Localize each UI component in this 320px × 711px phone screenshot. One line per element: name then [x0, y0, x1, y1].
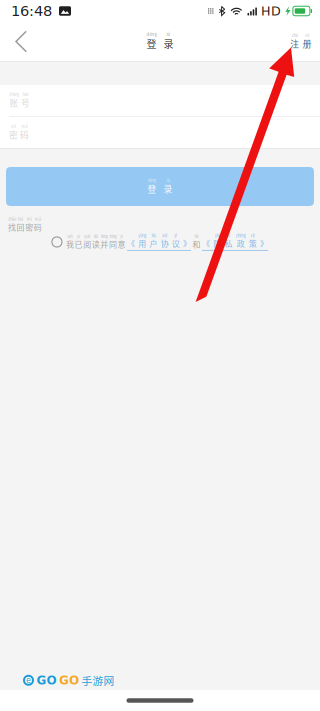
staticText: 手游网	[81, 673, 114, 688]
staticText: 码	[34, 221, 42, 233]
staticText: 同	[109, 238, 117, 250]
staticText: 并	[100, 238, 108, 250]
staticText: 议	[172, 237, 180, 249]
button[interactable]	[202, 233, 268, 251]
staticText: wǒ	[67, 233, 72, 239]
staticText: 码	[20, 128, 29, 141]
staticText: dēng	[146, 31, 156, 37]
staticText: mì	[11, 123, 16, 129]
staticText: lù	[166, 177, 169, 183]
staticText: 《	[202, 237, 210, 249]
staticText: 注	[290, 37, 299, 50]
staticText: sī	[227, 232, 230, 238]
staticText: yuè	[84, 233, 90, 239]
button[interactable]	[127, 233, 191, 251]
staticText: 》	[183, 237, 191, 249]
staticText: 意	[118, 238, 126, 250]
button[interactable]: 同意用户协议	[52, 237, 62, 247]
staticText: 找	[8, 221, 16, 233]
staticText: 用	[138, 237, 146, 249]
staticText: zhù	[292, 32, 298, 38]
staticText: 已	[74, 238, 82, 250]
staticText: huí	[18, 216, 23, 222]
staticText: 私	[224, 237, 232, 249]
button[interactable]: dēng	[6, 167, 314, 206]
staticText: yì	[120, 233, 123, 239]
button[interactable]: 返回	[0, 22, 42, 61]
staticText: 我	[66, 238, 74, 250]
staticText: 隐	[213, 237, 221, 249]
staticText: 密	[25, 221, 33, 233]
staticText: 登	[147, 182, 156, 195]
staticText: 策	[249, 237, 257, 249]
staticText: dú	[94, 233, 98, 239]
staticText: cè	[251, 232, 255, 238]
staticText: hào	[22, 91, 28, 97]
staticText: yǐ	[77, 233, 80, 239]
staticText: 读	[92, 238, 100, 250]
staticText: 阅	[83, 238, 91, 250]
staticText: dēng	[148, 177, 156, 183]
staticText: 协	[161, 237, 169, 249]
staticText: mǎ	[35, 216, 41, 222]
staticText: 政	[237, 237, 245, 249]
button[interactable]: zhù	[282, 22, 320, 61]
staticText: 登	[146, 36, 156, 51]
staticText: mǎ	[21, 123, 27, 129]
staticText: hù	[151, 232, 155, 238]
staticText: 密	[9, 128, 18, 141]
staticText: yǐn	[215, 232, 220, 238]
staticText: GO	[59, 673, 79, 687]
staticText: xié	[162, 232, 167, 238]
staticText: yì	[174, 232, 177, 238]
staticText: 册	[303, 37, 312, 50]
staticText: zhǎo	[8, 216, 16, 222]
staticText: 号	[21, 96, 30, 109]
staticText: bìng	[101, 233, 108, 239]
staticText: 《	[127, 237, 135, 249]
staticText: 录	[163, 36, 173, 51]
staticText: 户	[149, 237, 157, 249]
staticText: cè	[305, 32, 309, 38]
staticText: yòng	[138, 232, 146, 238]
staticText: 回	[17, 221, 25, 233]
staticText: lù	[166, 31, 170, 37]
staticText: e	[26, 676, 31, 685]
staticText: 和	[193, 238, 201, 250]
staticText: 16:48	[11, 2, 52, 20]
staticText: GO	[36, 673, 56, 687]
staticText: tóng	[109, 233, 116, 239]
staticText: mì	[27, 216, 32, 222]
button[interactable]: zhǎo	[8, 217, 42, 233]
staticText: 录	[163, 182, 172, 195]
staticText: 账	[9, 96, 18, 109]
staticText: zhèng	[236, 232, 246, 238]
staticText: HD	[261, 4, 281, 18]
staticText: hé	[195, 233, 199, 239]
staticText: 》	[260, 237, 268, 249]
staticText: zhàng	[9, 91, 19, 97]
